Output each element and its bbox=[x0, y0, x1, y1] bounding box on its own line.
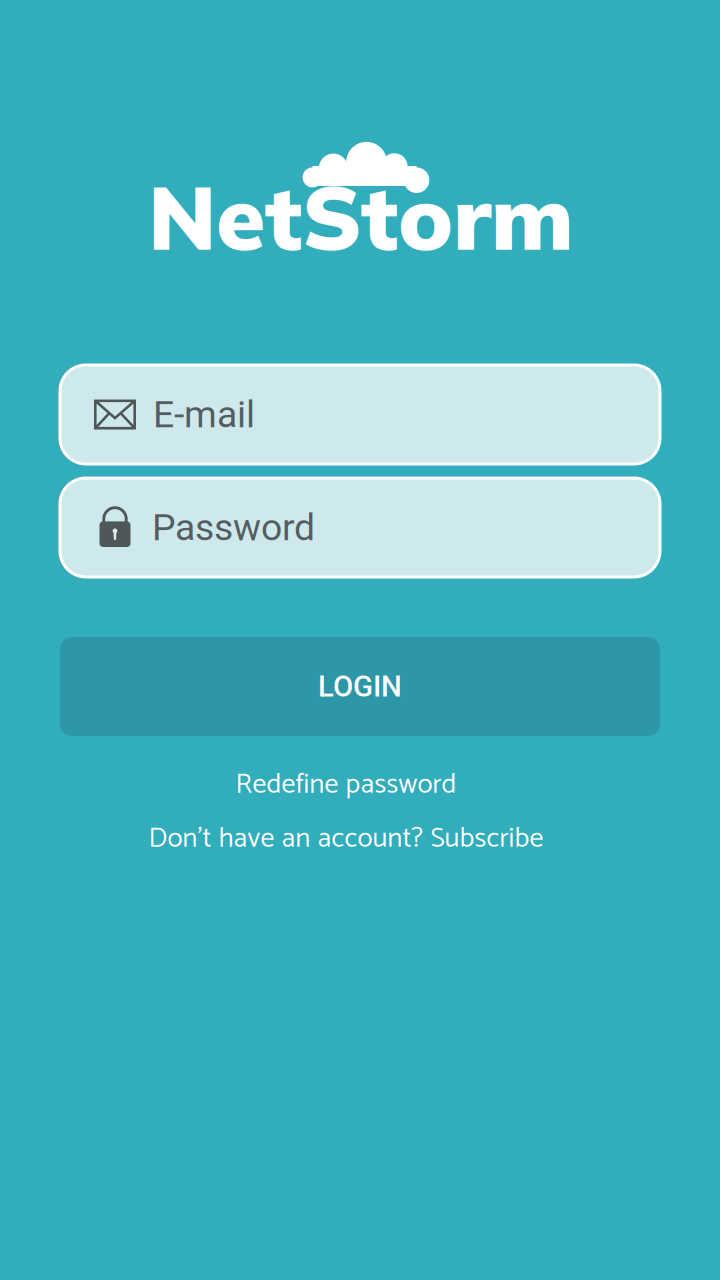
button[interactable]: Redefine password bbox=[46, 762, 646, 808]
button[interactable]: E-mail bbox=[60, 365, 660, 464]
staticText: Redefine password bbox=[235, 762, 456, 808]
staticText: LOGIN bbox=[318, 669, 402, 704]
button[interactable]: Password bbox=[60, 478, 660, 577]
staticText: Password bbox=[152, 506, 315, 549]
button[interactable]: Don’t have an account? Subscribe bbox=[26, 816, 666, 862]
staticText: E-mail bbox=[153, 393, 255, 436]
button[interactable]: LOGIN bbox=[60, 637, 660, 736]
staticText: Don’t have an account? Subscribe bbox=[148, 816, 543, 862]
staticText: NetStorm bbox=[148, 160, 574, 272]
